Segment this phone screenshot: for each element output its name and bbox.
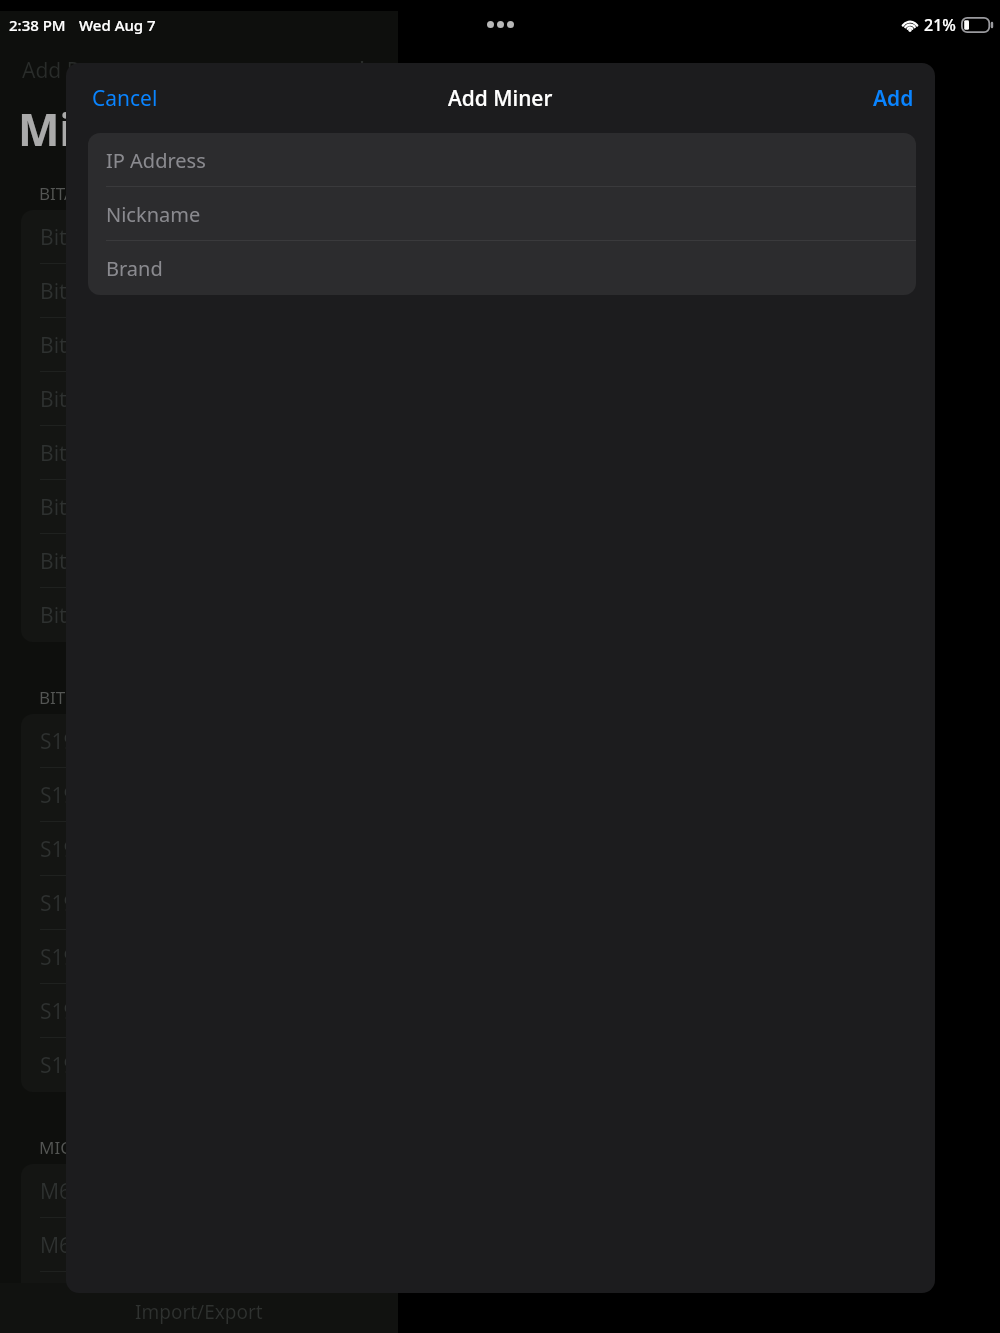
button[interactable]: Add Router: [0, 56, 398, 82]
staticText: MICROBT: [39, 1136, 116, 1159]
button[interactable]: Bitaxe 4: [21, 372, 398, 426]
other: Add: [352, 59, 372, 79]
staticText: Bitaxe 3: [40, 331, 119, 360]
staticText: Add Router: [22, 56, 134, 82]
staticText: Bitaxe 5: [40, 439, 119, 468]
button[interactable]: S19 #3: [21, 822, 398, 876]
button[interactable]: Brand: [88, 241, 916, 295]
staticText: BITAXE: [39, 182, 95, 205]
staticText: M6 #2: [40, 1231, 103, 1260]
staticText: 2:38 PM: [9, 15, 66, 35]
staticText: Bitaxe 1: [40, 223, 119, 252]
staticText: IP Address: [106, 147, 206, 174]
button[interactable]: M6 #3: [21, 1272, 398, 1326]
button[interactable]: S19 #7: [21, 1038, 398, 1092]
staticText: S19 #7: [40, 1051, 107, 1080]
staticText: S19 #3: [40, 835, 107, 864]
staticText: Import/Export: [135, 1299, 263, 1325]
staticText: M6 #1: [40, 1177, 103, 1206]
staticText: S19 #6: [40, 997, 107, 1026]
button[interactable]: Bitaxe 6: [21, 480, 398, 534]
button[interactable]: Bitaxe 7: [21, 534, 398, 588]
staticText: Bitaxe 8: [40, 601, 119, 630]
button[interactable]: Cancel: [66, 70, 184, 127]
staticText: Brand: [106, 255, 163, 282]
button[interactable]: S19 #5: [21, 930, 398, 984]
button[interactable]: IP Address: [88, 133, 916, 187]
button[interactable]: Bitaxe 3: [21, 318, 398, 372]
staticText: Wed Aug 7: [79, 15, 156, 35]
button[interactable]: M6 #1: [21, 1164, 398, 1218]
button[interactable]: Bitaxe 8: [21, 588, 398, 642]
button[interactable]: S19 #2: [21, 768, 398, 822]
staticText: Bitaxe 2: [40, 277, 119, 306]
button[interactable]: Nickname: [88, 187, 916, 241]
staticText: Miners: [18, 99, 170, 159]
button[interactable]: Add: [852, 70, 935, 127]
button[interactable]: S19 #1: [21, 714, 398, 768]
button[interactable]: S19 #4: [21, 876, 398, 930]
staticText: S19 #2: [40, 781, 107, 810]
staticText: Bitaxe 4: [40, 385, 119, 414]
button[interactable]: Bitaxe 2: [21, 264, 398, 318]
staticText: BITMAIN: [39, 686, 111, 709]
staticText: Add Miner: [448, 84, 553, 113]
staticText: 21%: [924, 14, 956, 36]
button[interactable]: Import/Export: [0, 1283, 398, 1333]
staticText: Nickname: [106, 201, 201, 228]
staticText: S19 #4: [40, 889, 107, 918]
button[interactable]: Bitaxe 1: [21, 210, 398, 264]
staticText: S19 #1: [40, 727, 107, 756]
staticText: Add: [873, 84, 914, 113]
staticText: Bitaxe 6: [40, 493, 119, 522]
staticText: Cancel: [92, 84, 158, 113]
button[interactable]: M6 #2: [21, 1218, 398, 1272]
button[interactable]: S19 #6: [21, 984, 398, 1038]
button[interactable]: Bitaxe 5: [21, 426, 398, 480]
staticText: S19 #5: [40, 943, 107, 972]
staticText: Bitaxe 7: [40, 547, 119, 576]
staticText: M6 #3: [40, 1285, 103, 1314]
